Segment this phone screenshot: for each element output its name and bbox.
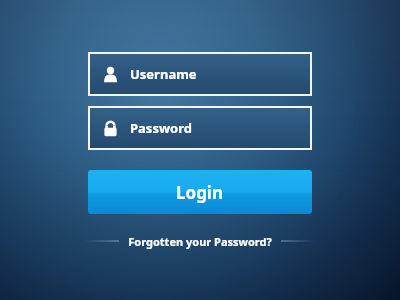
staticText: Forgotten your Password? — [128, 234, 272, 249]
button[interactable]: Forgotten your Password? — [119, 234, 281, 249]
button[interactable]: Username — [88, 52, 312, 96]
other: Username — [102, 66, 119, 83]
other: Password — [102, 120, 119, 137]
button[interactable]: Login — [88, 170, 312, 214]
staticText: Password — [130, 119, 192, 137]
button[interactable]: Password — [88, 106, 312, 150]
staticText: Username — [130, 65, 197, 83]
staticText: Login — [176, 181, 224, 204]
